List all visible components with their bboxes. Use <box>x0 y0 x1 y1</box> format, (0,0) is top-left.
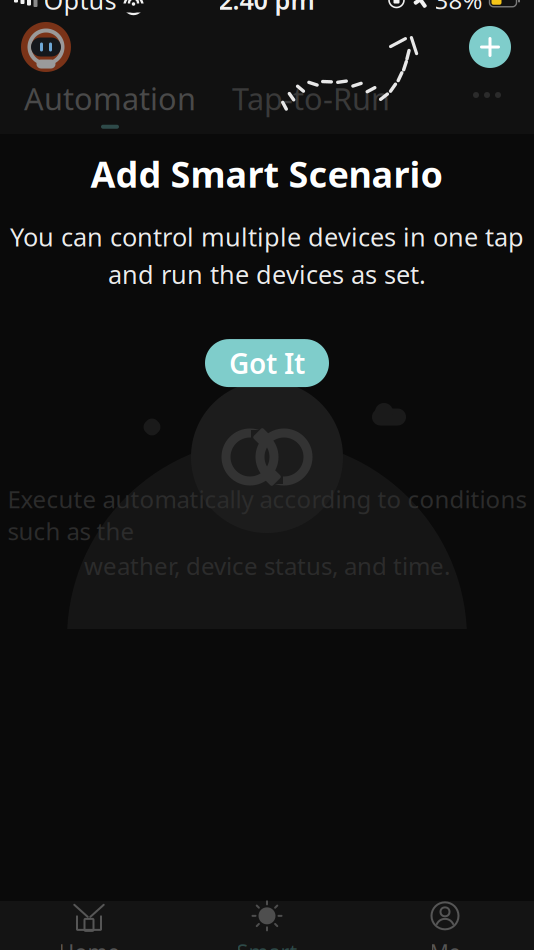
button[interactable]: Me <box>356 901 534 950</box>
staticText: 38% <box>434 0 482 16</box>
button[interactable]: Tap-to-Run <box>230 78 392 129</box>
button[interactable]: Got It <box>205 339 329 387</box>
staticText: Execute automatically according to condi… <box>7 483 526 547</box>
staticText: Me <box>429 938 460 950</box>
staticText: and run the devices as set. <box>108 257 426 291</box>
button[interactable]: Home <box>0 901 178 950</box>
staticText: Optus <box>43 0 116 17</box>
staticText: Automation <box>24 78 196 119</box>
staticText: weather, device status, and time. <box>84 550 450 582</box>
button[interactable]: Automation <box>22 78 198 129</box>
staticText: Home <box>58 938 119 950</box>
staticText: You can control multiple devices in one … <box>10 220 524 253</box>
button[interactable]: Smart <box>178 901 356 950</box>
button[interactable]: More options <box>462 78 512 112</box>
button[interactable]: Add <box>464 21 516 73</box>
staticText: Add Smart Scenario <box>90 150 443 198</box>
staticText: Got It <box>229 344 305 382</box>
button[interactable]: Profile <box>18 19 74 75</box>
staticText: Tap-to-Run <box>232 78 390 119</box>
staticText: Smart <box>236 938 297 950</box>
staticText: 2:40 pm <box>218 0 314 17</box>
